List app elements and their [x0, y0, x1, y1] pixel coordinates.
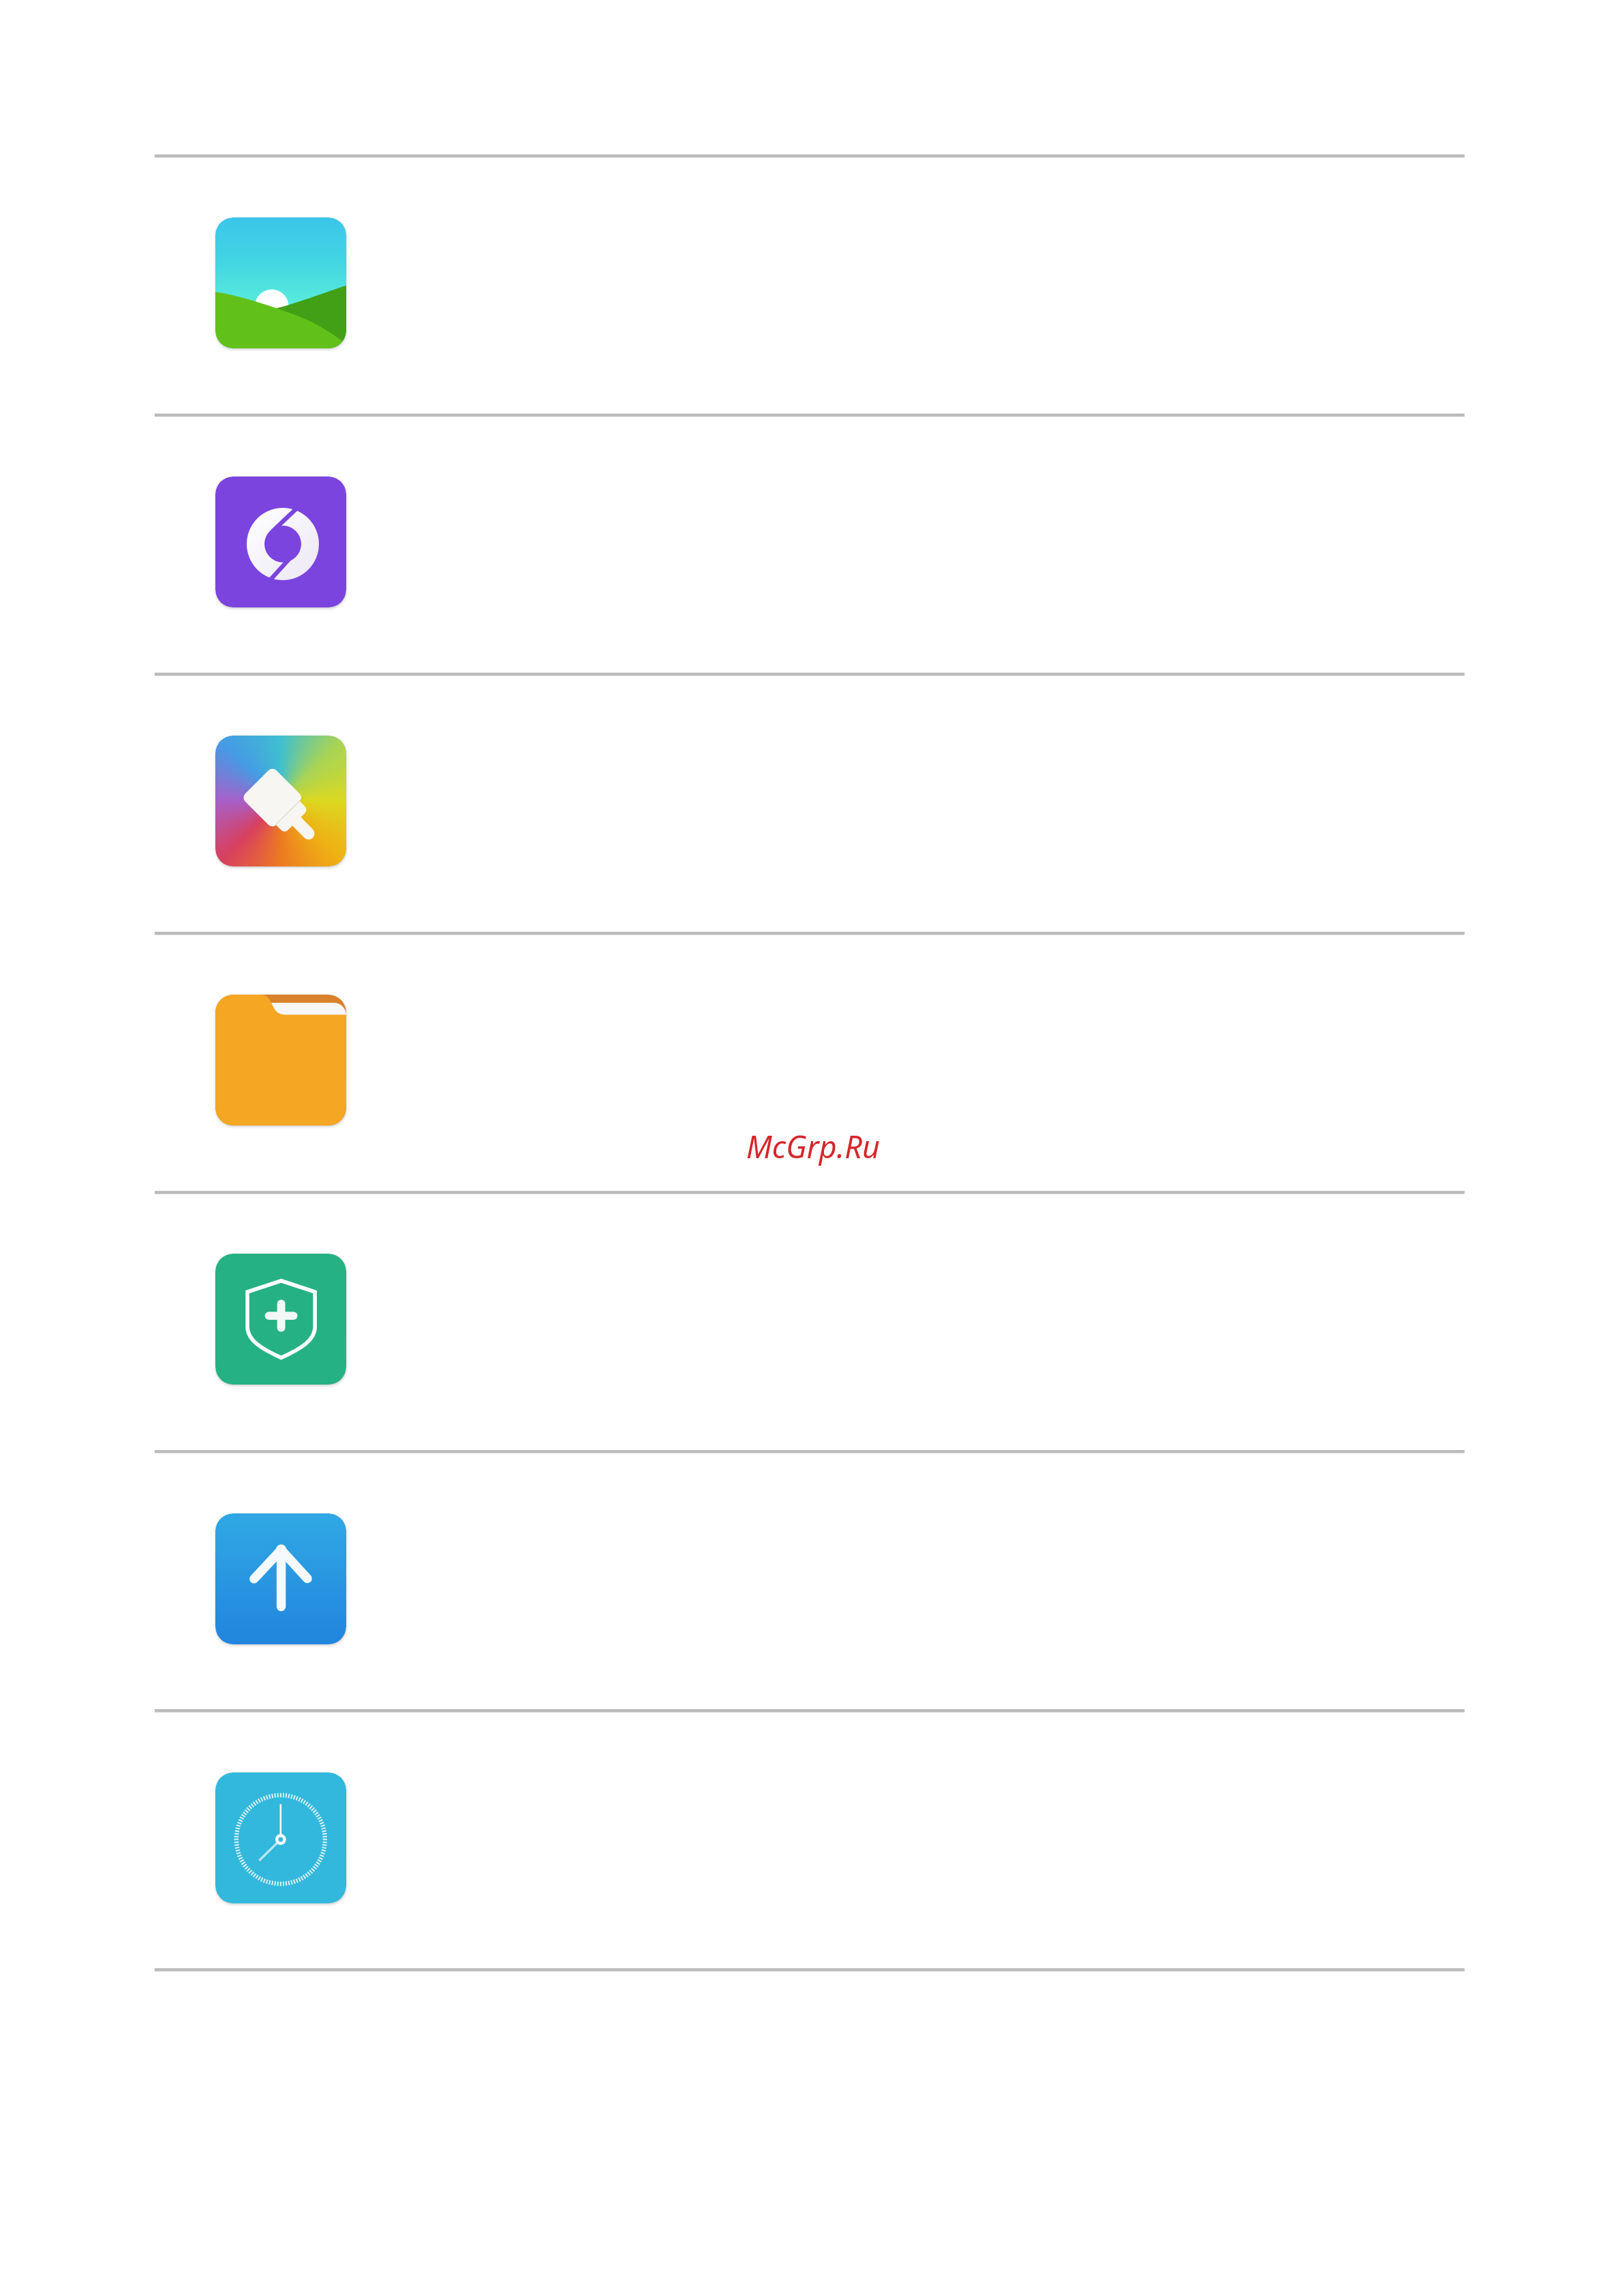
- button[interactable]: Phone Manager: [215, 477, 346, 607]
- button[interactable]: File Manager: [215, 995, 346, 1126]
- button[interactable]: Clock: [215, 1772, 346, 1903]
- button[interactable]: Security: [215, 1254, 346, 1385]
- button[interactable]: Themes: [215, 736, 346, 866]
- button[interactable]: Gallery: [215, 217, 346, 348]
- button[interactable]: System Update: [215, 1513, 346, 1644]
- staticText: McGrp.Ru: [746, 1126, 881, 1167]
